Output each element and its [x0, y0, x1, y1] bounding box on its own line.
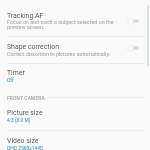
button[interactable]: Toggle switch, off	[121, 41, 145, 55]
button[interactable]: Toggle switch, off	[121, 14, 145, 28]
button[interactable]	[0, 103, 150, 130]
staticText: Picture size	[7, 109, 43, 117]
staticText: FRONT CAMERA	[7, 96, 45, 102]
staticText: Shape correction	[7, 43, 59, 51]
staticText: Video size	[7, 137, 39, 145]
staticText: Focus on and track a subject selected on…	[7, 19, 114, 25]
button[interactable]	[0, 37, 150, 63]
button[interactable]	[0, 131, 150, 150]
staticText: 4:3 (8.0 M)	[7, 117, 31, 123]
staticText: preview screen.	[7, 24, 45, 30]
staticText: Timer	[7, 69, 25, 77]
button[interactable]	[0, 8, 150, 36]
staticText: Off	[7, 77, 14, 83]
button[interactable]	[0, 64, 150, 88]
staticText: Tracking AF	[7, 12, 44, 20]
staticText: QHD 2560x1440	[7, 145, 43, 150]
staticText: Correct distortion in pictures automatic…	[7, 51, 111, 57]
